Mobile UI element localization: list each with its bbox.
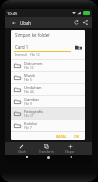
staticText: File 9 (24, 102, 32, 106)
staticText: OK (74, 134, 80, 139)
staticText: Ubah (18, 150, 26, 154)
button[interactable]: Back (9, 18, 18, 27)
button[interactable]: Ubah (9, 142, 34, 155)
staticText: Simpan ke folder (15, 32, 50, 38)
button[interactable]: Home (44, 155, 53, 164)
button[interactable]: BATAL (54, 133, 69, 140)
button[interactable]: Ekspor (58, 142, 82, 155)
staticText: File 21 (24, 114, 34, 118)
button[interactable]: Transform (34, 142, 58, 155)
staticText: Gambar (24, 97, 40, 102)
button[interactable]: Recents (22, 155, 31, 164)
staticText: Dokumen (24, 61, 43, 66)
staticText: File 44 (24, 90, 34, 94)
staticText: BATAL (56, 134, 67, 139)
button[interactable]: Rotate (72, 18, 81, 27)
button[interactable]: Koleksi (11, 119, 85, 131)
staticText: Ubah (20, 20, 32, 26)
staticText: Musik (24, 73, 36, 78)
button[interactable]: Musik (11, 71, 85, 83)
staticText: File 7 (24, 126, 32, 130)
staticText: Transform (39, 150, 54, 154)
staticText: File 12 (24, 66, 34, 70)
button[interactable]: Back (66, 155, 75, 164)
staticText: Card 1 (15, 44, 29, 50)
staticText: Internal (15, 53, 27, 57)
staticText: File 5 (24, 78, 32, 82)
button[interactable]: Fotografis (11, 107, 85, 119)
button[interactable]: Dokumen (11, 59, 85, 71)
staticText: Fotografis (24, 109, 43, 114)
button[interactable]: Share (81, 18, 90, 27)
button[interactable]: Create new folder (74, 43, 83, 52)
staticText: File 12 (30, 53, 40, 57)
staticText: 10:45 (7, 11, 18, 16)
staticText: Unduhan (24, 85, 42, 90)
staticText: Koleksi (24, 121, 38, 126)
button[interactable]: Unduhan (11, 83, 85, 95)
button[interactable]: OK (72, 133, 82, 140)
staticText: Ekspor (65, 150, 75, 154)
button[interactable]: Gambar (11, 95, 85, 107)
